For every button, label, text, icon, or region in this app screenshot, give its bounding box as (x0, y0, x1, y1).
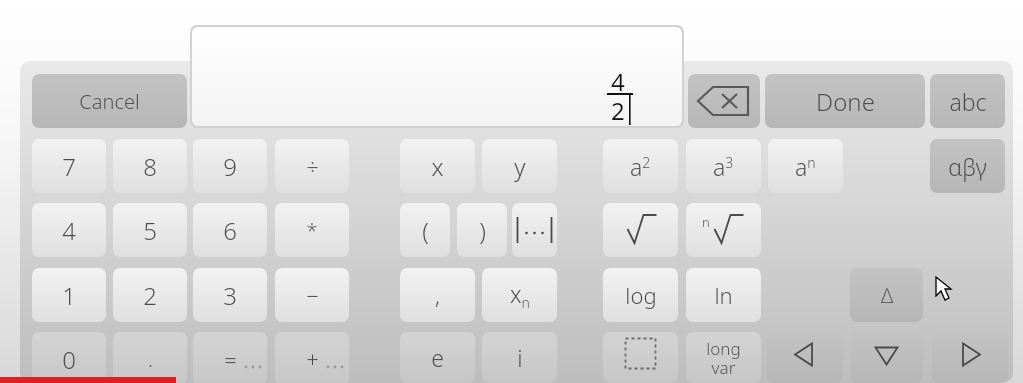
staticText: 5 (143, 214, 157, 247)
button[interactable]: nth root (686, 203, 761, 257)
button[interactable]: 8 (113, 139, 187, 193)
button[interactable]: , (400, 268, 475, 322)
button[interactable]: an (768, 139, 843, 193)
button[interactable]: . (113, 332, 187, 383)
staticText: + (306, 344, 319, 374)
staticText: ln (714, 280, 733, 310)
staticText: 3 (223, 279, 237, 312)
button[interactable]: ln (686, 268, 761, 322)
button[interactable]: Backspace (688, 74, 760, 128)
staticText: 2 (143, 279, 157, 312)
staticText: 4 (611, 65, 625, 98)
button[interactable]: 1 (32, 268, 106, 322)
button[interactable]: i (482, 332, 557, 383)
staticText: 9 (223, 150, 237, 183)
staticText: log (625, 280, 657, 310)
staticText: 6 (223, 214, 237, 247)
staticText: ÷ (306, 151, 319, 181)
button[interactable]: 6 (193, 203, 267, 257)
button[interactable]: 3 (193, 268, 267, 322)
staticText: ) (479, 214, 486, 247)
button[interactable]: long var (686, 332, 761, 383)
staticText: * (306, 217, 318, 244)
staticText: , (435, 280, 440, 310)
staticText: long var (706, 337, 741, 379)
staticText: n (702, 213, 710, 229)
button[interactable]: 7 (32, 139, 106, 193)
button[interactable]: 0 (32, 332, 106, 383)
button[interactable]: Move down (850, 332, 923, 383)
button[interactable]: 4 (32, 203, 106, 257)
staticText: y (514, 150, 526, 183)
staticText: 1 (62, 279, 76, 312)
staticText: i (517, 342, 523, 373)
button[interactable]: a2 (603, 139, 678, 193)
button[interactable]: abc (930, 74, 1005, 128)
button[interactable]: ∆ (850, 268, 923, 322)
button[interactable]: Cancel (32, 74, 187, 128)
button[interactable]: 9 (193, 139, 267, 193)
button[interactable]: Move right (932, 332, 1008, 383)
staticText: abc (949, 86, 987, 117)
button[interactable]: * (275, 203, 349, 257)
button[interactable]: log (603, 268, 678, 322)
staticText: x (431, 150, 444, 183)
button[interactable]: ) (457, 203, 507, 257)
button[interactable]: Done (765, 74, 925, 128)
staticText: xn (510, 278, 530, 312)
staticText: Cancel (79, 88, 140, 115)
staticText: 8 (143, 150, 157, 183)
button[interactable]: y (482, 139, 557, 193)
button[interactable]: 4 (190, 25, 684, 128)
staticText: 2 (611, 94, 625, 127)
button[interactable]: αβγ (930, 139, 1005, 193)
button[interactable]: a3 (686, 139, 761, 193)
button[interactable]: = (193, 332, 267, 383)
button[interactable]: − (275, 268, 349, 322)
staticText: 0 (62, 343, 76, 376)
staticText: a2 (630, 151, 651, 182)
staticText: ( (422, 214, 429, 247)
staticText: 7 (62, 150, 76, 183)
button[interactable]: ( (400, 203, 450, 257)
button[interactable]: 5 (113, 203, 187, 257)
button[interactable]: Move left (767, 332, 843, 383)
staticText: − (306, 280, 319, 310)
staticText: e (431, 342, 444, 373)
button[interactable]: + (275, 332, 349, 383)
button[interactable]: x (400, 139, 475, 193)
button[interactable]: Placeholder box (603, 332, 678, 383)
staticText: αβγ (948, 151, 987, 182)
staticText: ∆ (880, 284, 894, 307)
button[interactable]: e (400, 332, 475, 383)
button[interactable]: Absolute value (512, 203, 557, 257)
button[interactable]: xn (482, 268, 557, 322)
staticText: = (224, 344, 237, 374)
staticText: Done (816, 85, 875, 118)
staticText: a3 (713, 151, 734, 182)
staticText: an (795, 151, 816, 182)
staticText: . (148, 346, 153, 373)
staticText: 4 (62, 214, 76, 247)
button[interactable]: Square root (603, 203, 678, 257)
button[interactable]: ÷ (275, 139, 349, 193)
button[interactable]: 2 (113, 268, 187, 322)
